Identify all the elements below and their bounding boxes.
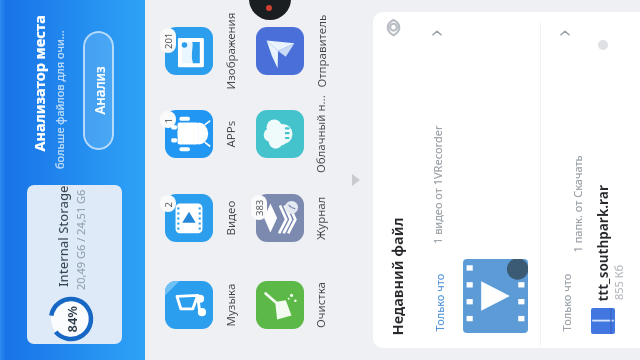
button[interactable]	[27, 185, 122, 344]
button[interactable]: Музыка	[165, 281, 213, 329]
staticText: 1 видео от 1VRecorder	[430, 125, 445, 244]
staticText: APPs	[222, 120, 238, 147]
staticText: Internal Storage	[54, 185, 72, 287]
button[interactable]: Журнал	[256, 194, 304, 242]
staticText: Музыка	[222, 283, 238, 326]
staticText: Отправитель	[313, 14, 329, 87]
button[interactable]: Video thumbnail	[463, 259, 528, 333]
staticText: Изображения	[222, 12, 238, 89]
staticText: 855 Кб	[611, 265, 626, 300]
staticText: 1 папк. от Скачать	[569, 154, 584, 252]
button[interactable]: Очистка	[256, 281, 304, 329]
staticText: Журнал	[313, 196, 329, 240]
staticText: Анализатор места	[28, 14, 48, 151]
staticText: 383	[253, 199, 266, 216]
staticText: Только что	[431, 273, 446, 331]
button[interactable]: Отправитель	[256, 27, 304, 75]
button[interactable]: Archive file	[591, 308, 615, 334]
button[interactable]: Изображения	[165, 27, 213, 75]
staticText: Только что	[558, 273, 573, 331]
staticText: больше файлов для очи...	[52, 30, 67, 169]
staticText: Недавний файл	[386, 216, 406, 335]
button[interactable]: APPs	[165, 110, 213, 158]
staticText: Видео	[222, 200, 238, 235]
staticText: 2	[161, 201, 174, 207]
staticText: 201	[162, 32, 175, 49]
staticText: Анализ	[90, 65, 108, 114]
button[interactable]: Облачный н...	[256, 110, 304, 158]
staticText: ttt_southpark.rar	[593, 184, 611, 301]
staticText: Облачный н...	[313, 95, 329, 173]
staticText: 84%	[62, 305, 80, 332]
staticText: 20,49 G6 / 24,51 G6	[73, 189, 88, 290]
staticText: Очистка	[313, 282, 329, 328]
staticText: 1	[161, 117, 174, 123]
button[interactable]: Анализ	[83, 31, 114, 150]
button[interactable]: Видео	[165, 194, 213, 242]
